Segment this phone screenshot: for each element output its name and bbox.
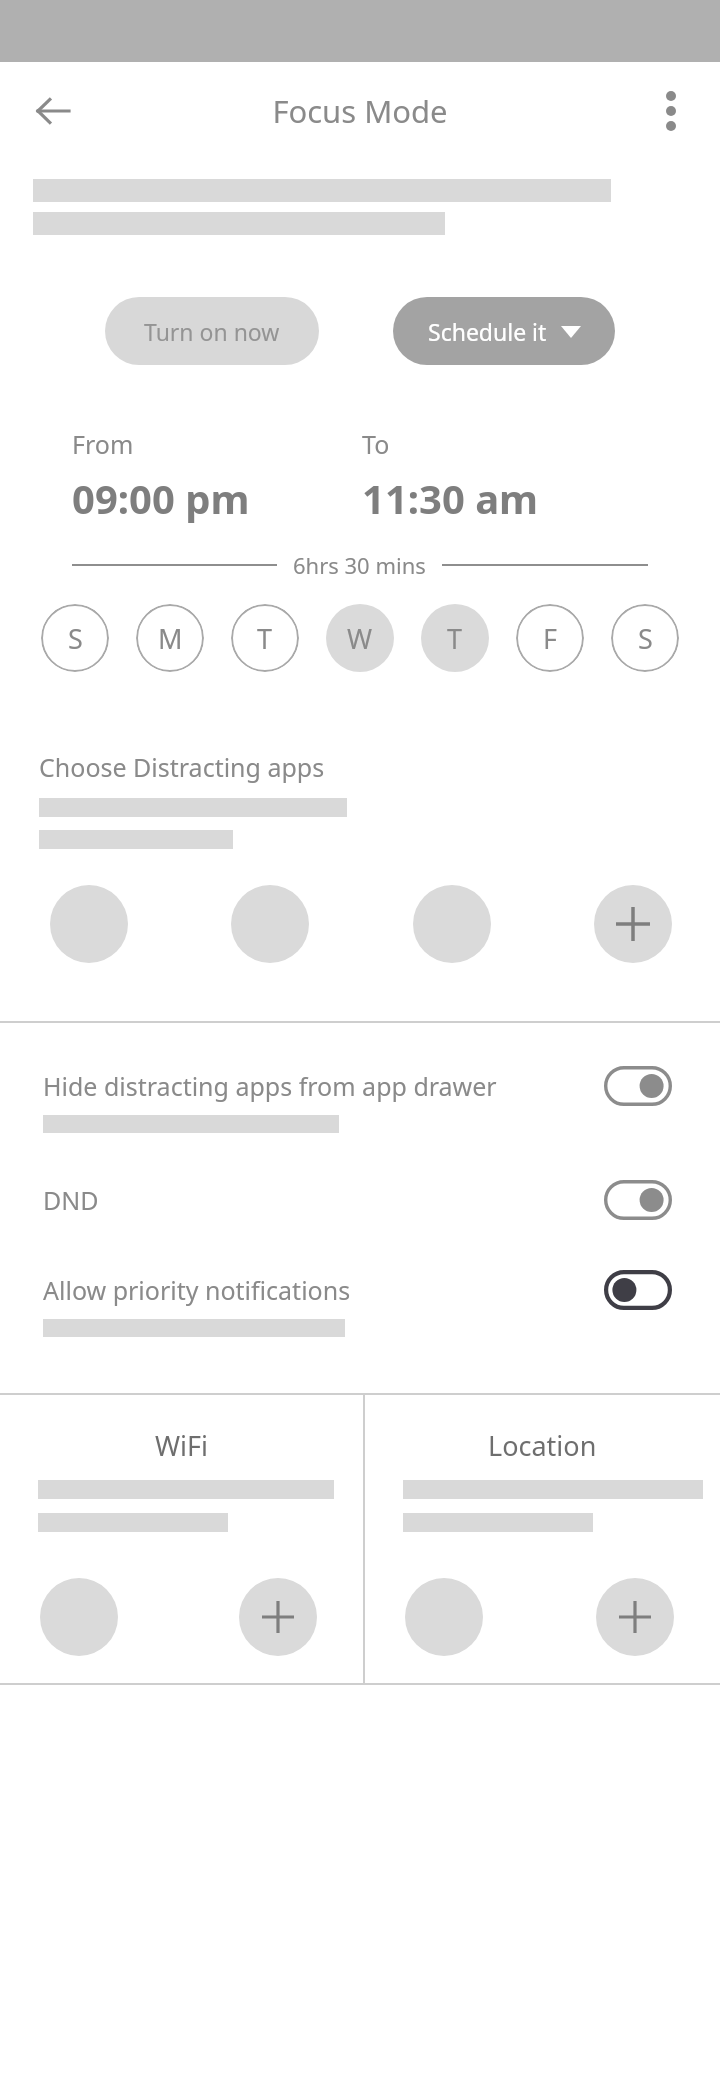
button[interactable]: WiFi item bbox=[40, 1578, 118, 1656]
staticText: Schedule it bbox=[428, 316, 547, 347]
staticText: From bbox=[72, 427, 134, 461]
staticText: F bbox=[543, 620, 558, 657]
staticText: Allow priority notifications bbox=[43, 1273, 351, 1307]
staticText: 11:30 am bbox=[362, 471, 539, 525]
staticText: Focus Mode bbox=[272, 90, 448, 132]
button[interactable]: Add WiFi bbox=[239, 1578, 317, 1656]
staticText: 09:00 pm bbox=[72, 471, 250, 525]
staticText: W bbox=[347, 620, 373, 657]
button[interactable]: M bbox=[136, 604, 204, 672]
button[interactable]: S bbox=[41, 604, 109, 672]
button[interactable]: App bbox=[413, 885, 491, 963]
button[interactable]: T bbox=[231, 604, 299, 672]
button[interactable]: App bbox=[50, 885, 128, 963]
button[interactable]: Location item bbox=[405, 1578, 483, 1656]
other: DND bbox=[604, 1180, 672, 1220]
button[interactable]: Back bbox=[22, 80, 84, 142]
other: Allow priority notifications bbox=[604, 1270, 672, 1310]
staticText: WiFi bbox=[155, 1427, 209, 1464]
button[interactable]: F bbox=[516, 604, 584, 672]
staticText: Choose Distracting apps bbox=[39, 750, 325, 784]
button[interactable]: Allow priority notifications bbox=[0, 1273, 720, 1337]
staticText: S bbox=[68, 620, 83, 657]
button[interactable]: W bbox=[326, 604, 394, 672]
button[interactable]: Add app bbox=[594, 885, 672, 963]
button[interactable]: Hide distracting apps from app drawer bbox=[0, 1069, 720, 1133]
staticText: To bbox=[362, 427, 390, 461]
staticText: 6hrs 30 mins bbox=[293, 550, 426, 580]
button[interactable]: App bbox=[231, 885, 309, 963]
staticText: S bbox=[638, 620, 653, 657]
staticText: T bbox=[447, 620, 463, 657]
staticText: M bbox=[158, 620, 183, 657]
staticText: Hide distracting apps from app drawer bbox=[43, 1069, 497, 1103]
button[interactable]: More options bbox=[642, 82, 700, 140]
button[interactable]: T bbox=[421, 604, 489, 672]
staticText: T bbox=[257, 620, 273, 657]
staticText: DND bbox=[43, 1183, 99, 1217]
button[interactable]: Add Location bbox=[596, 1578, 674, 1656]
staticText: Location bbox=[488, 1427, 597, 1464]
button[interactable]: DND bbox=[0, 1183, 720, 1223]
staticText: Turn on now bbox=[144, 316, 280, 347]
button[interactable]: S bbox=[611, 604, 679, 672]
button[interactable]: Schedule it bbox=[393, 297, 615, 365]
button[interactable]: Turn on now bbox=[105, 297, 319, 365]
other: Hide distracting apps from app drawer bbox=[604, 1066, 672, 1106]
